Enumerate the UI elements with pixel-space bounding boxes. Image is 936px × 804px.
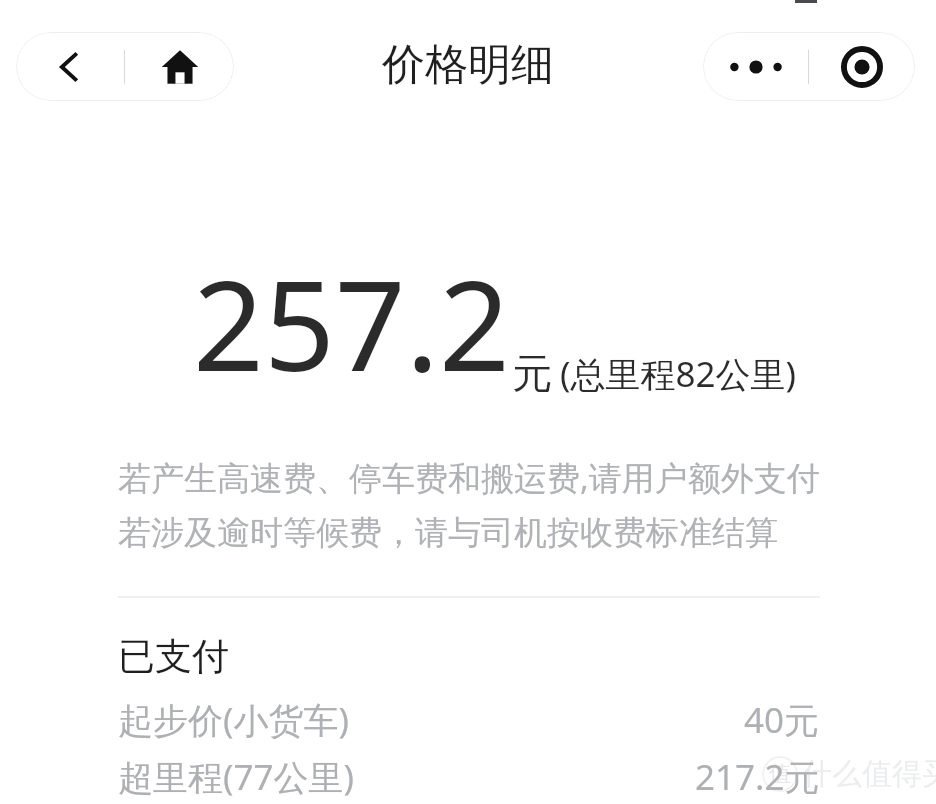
staticText: 40元	[744, 696, 820, 744]
staticText: 值	[769, 760, 791, 788]
staticText: 若产生高速费、停车费和搬运费,请用户额外支付	[118, 455, 820, 500]
button[interactable]: Back	[16, 32, 124, 101]
staticText: 价格明细	[382, 38, 554, 92]
staticText: 已支付	[118, 633, 229, 680]
staticText: 若涉及逾时等候费，请与司机按收费标准结算	[118, 512, 778, 554]
staticText: 超里程(77公里)	[118, 753, 355, 801]
button[interactable]: Home	[125, 32, 234, 101]
button[interactable]: Close mini program	[809, 32, 915, 101]
button[interactable]: 起步价(小货车)	[118, 694, 820, 746]
button[interactable]: More options	[703, 32, 808, 101]
staticText: 元	[512, 348, 552, 398]
staticText: 起步价(小货车)	[118, 696, 350, 744]
staticText: 什么值得买	[802, 755, 936, 793]
staticText: 257.2	[193, 238, 510, 407]
staticText: 217.2元	[695, 753, 820, 801]
button[interactable]: 超里程(77公里)	[118, 751, 820, 803]
staticText: (总里程82公里)	[560, 350, 797, 398]
